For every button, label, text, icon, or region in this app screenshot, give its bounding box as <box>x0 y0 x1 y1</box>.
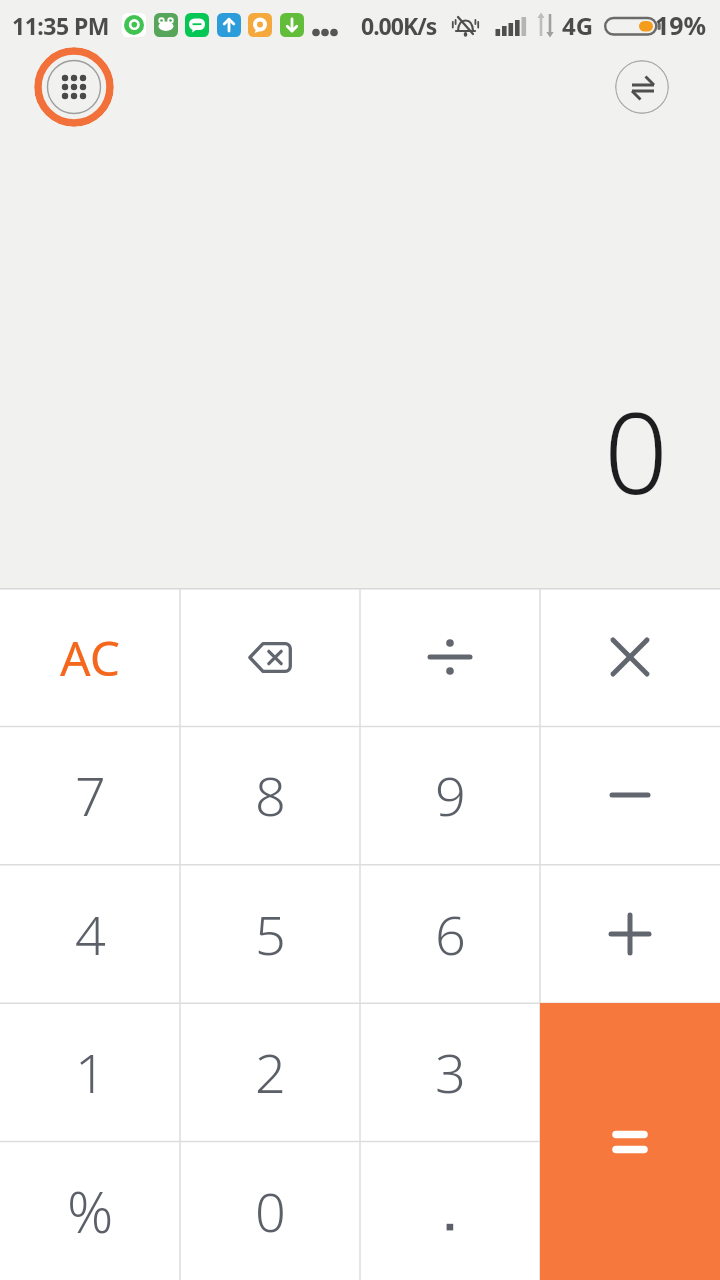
staticText: 1 <box>75 1035 106 1109</box>
button[interactable]: 6 <box>360 865 540 1003</box>
button[interactable] <box>615 60 669 114</box>
button[interactable]: 1 <box>0 1003 180 1141</box>
button[interactable]: 7 <box>0 726 180 864</box>
staticText: 3 <box>435 1035 466 1109</box>
staticText: 6 <box>435 897 466 971</box>
staticText: 0 <box>255 1174 286 1248</box>
staticText: 7 <box>75 758 106 832</box>
button[interactable] <box>540 1003 720 1280</box>
button[interactable]: 3 <box>360 1003 540 1141</box>
staticText: 4 <box>75 897 106 971</box>
staticText: 0.00K/s <box>361 10 437 41</box>
button[interactable]: 4 <box>0 865 180 1003</box>
button[interactable] <box>34 47 114 127</box>
button[interactable] <box>540 865 720 1003</box>
button[interactable] <box>180 588 360 726</box>
button[interactable]: 5 <box>180 865 360 1003</box>
button[interactable] <box>540 588 720 726</box>
staticText: 8 <box>255 758 286 832</box>
button[interactable] <box>540 726 720 864</box>
button[interactable] <box>360 588 540 726</box>
button[interactable]: 0 <box>180 1142 360 1280</box>
staticText: 2 <box>255 1035 286 1109</box>
staticText: AC <box>60 625 121 690</box>
staticText: 4G <box>562 9 594 42</box>
button[interactable] <box>360 1142 540 1280</box>
staticText: 5 <box>255 897 286 971</box>
staticText: 0 <box>604 374 668 527</box>
staticText: 19% <box>655 8 707 42</box>
button[interactable]: 2 <box>180 1003 360 1141</box>
staticText: 11:35 PM <box>12 10 110 41</box>
button[interactable]: % <box>0 1142 180 1280</box>
button[interactable]: AC <box>0 588 180 726</box>
button[interactable]: 9 <box>360 726 540 864</box>
staticText: 9 <box>435 758 466 832</box>
button[interactable]: 8 <box>180 726 360 864</box>
staticText: % <box>67 1172 114 1250</box>
